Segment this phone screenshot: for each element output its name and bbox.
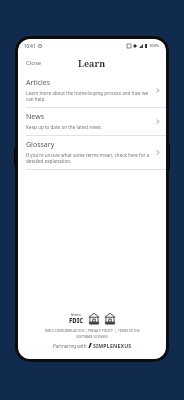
staticText: NMLS CONSUMER ACCESS | PRIVACY POLICY | …	[45, 329, 140, 333]
button[interactable]: Close	[18, 55, 50, 71]
staticText: SOFTWARE LICENSES	[76, 335, 108, 339]
staticText: 10:41	[24, 43, 36, 49]
staticText: Close	[26, 59, 42, 67]
staticText: SIMPLENEXUS	[93, 342, 132, 349]
staticText: FDIC	[69, 317, 84, 325]
staticText: News	[26, 112, 44, 122]
staticText: Learn more about the home-buying process…	[26, 90, 152, 102]
staticText: Glossary	[26, 140, 55, 150]
staticText: If you're unsure what some terms mean, c…	[26, 152, 152, 164]
staticText: Articles	[26, 78, 51, 88]
staticText: Member	[71, 313, 82, 317]
staticText: 100%	[149, 43, 160, 48]
staticText: Learn	[78, 57, 106, 69]
button[interactable]: Glossary	[18, 136, 166, 169]
button[interactable]: Articles	[18, 74, 166, 107]
staticText: Partnering with	[53, 343, 88, 349]
button[interactable]: News	[18, 108, 166, 135]
staticText: Keep up to date on the latest news.	[26, 124, 102, 130]
